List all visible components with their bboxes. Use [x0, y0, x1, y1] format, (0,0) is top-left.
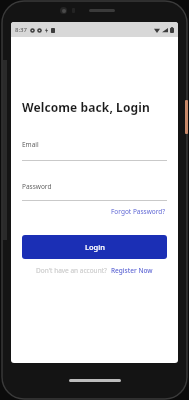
button[interactable]: Password — [22, 182, 167, 201]
staticText: Don't have an account? — [36, 266, 107, 275]
staticText: Welcome back, Login — [22, 99, 150, 115]
staticText: Login — [85, 242, 105, 252]
button[interactable]: Email — [22, 140, 167, 161]
staticText: Password — [22, 182, 52, 191]
staticText: Register Now — [111, 266, 153, 275]
staticText: 8:37 — [15, 26, 27, 34]
button[interactable]: Forgot Password? — [110, 206, 167, 217]
staticText: Forgot Password? — [111, 207, 166, 216]
staticText: Email — [22, 140, 39, 149]
button[interactable]: Login — [22, 235, 167, 259]
button[interactable]: Register Now — [111, 266, 153, 275]
